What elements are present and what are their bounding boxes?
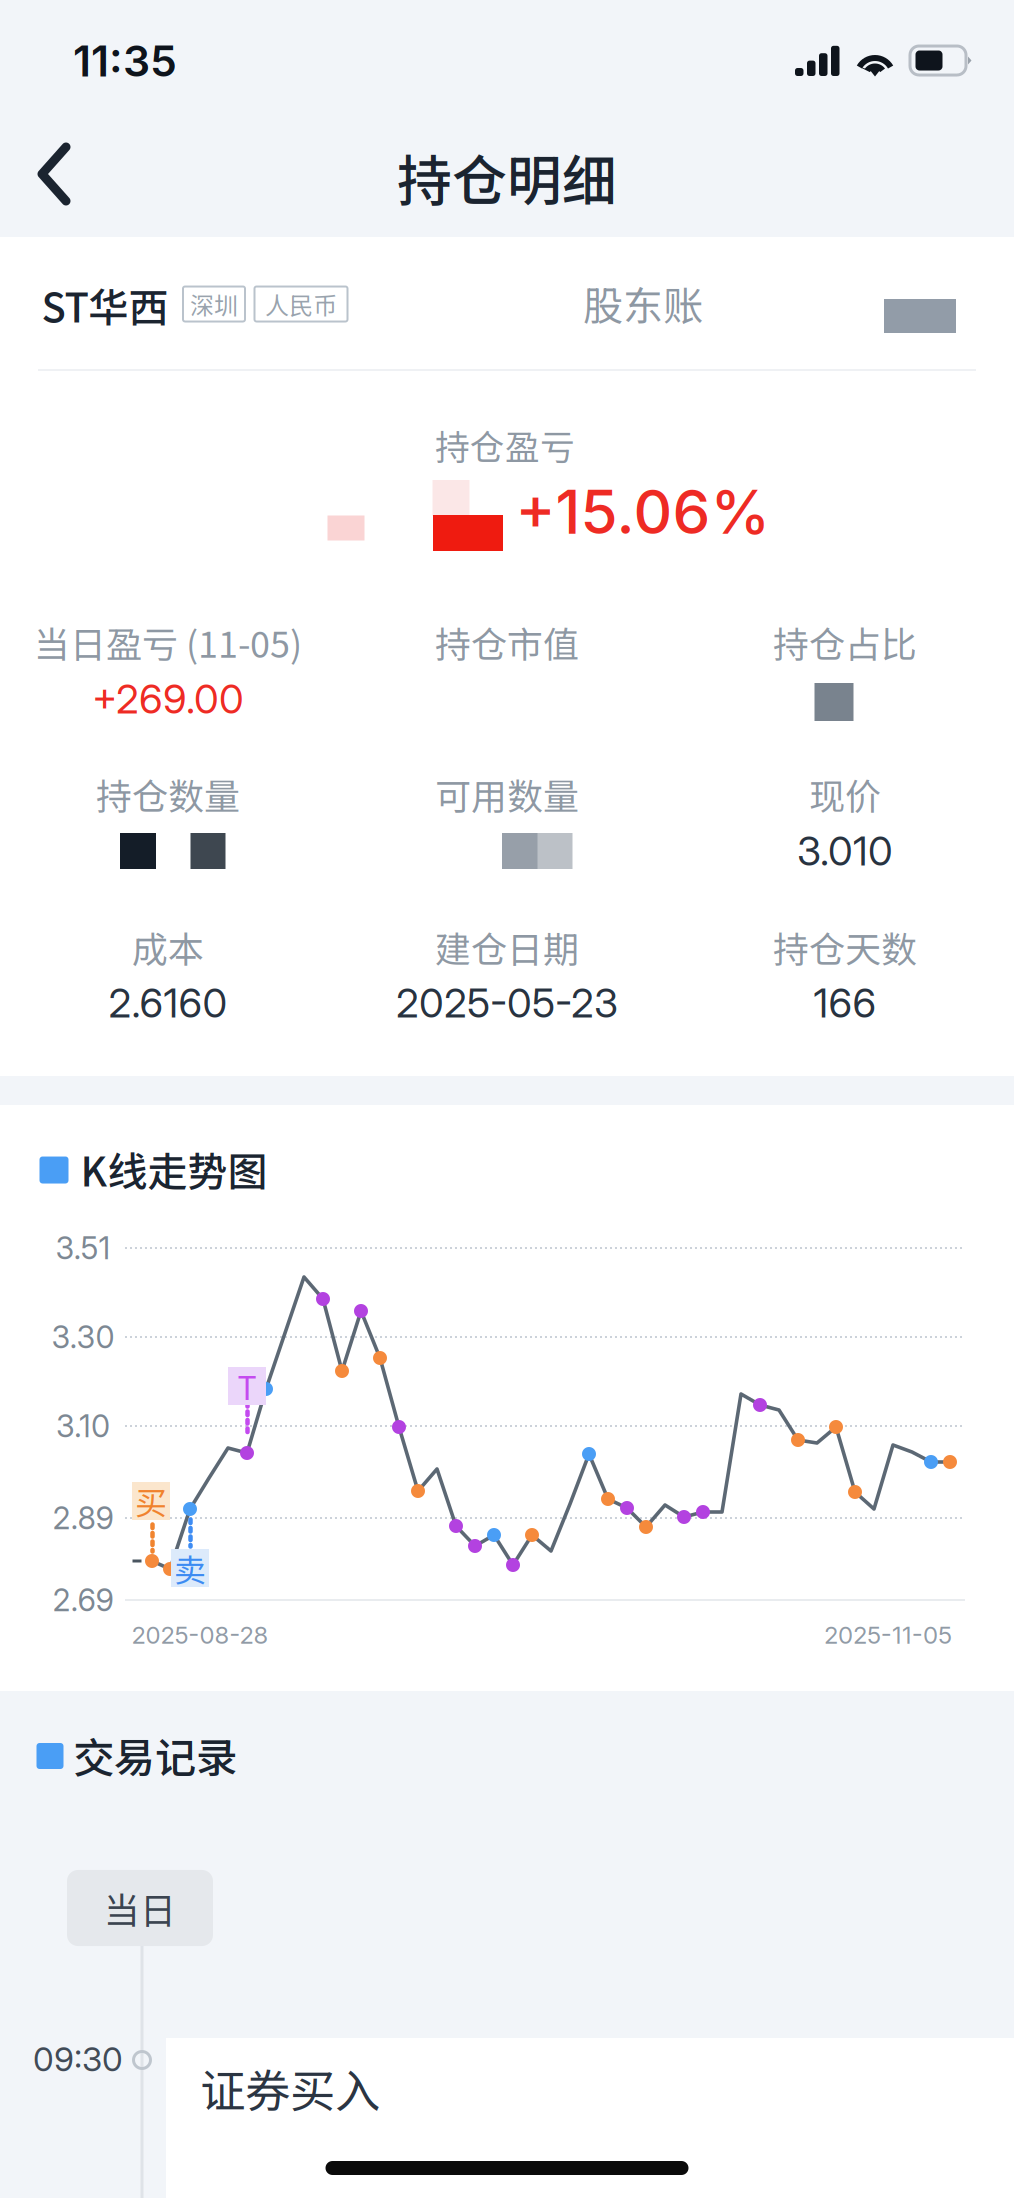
staticText: 股东账 <box>583 274 703 332</box>
staticText: 持仓明细 <box>397 137 617 217</box>
staticText: 持仓数量 <box>96 768 240 820</box>
staticText: 可用数量 <box>435 768 579 820</box>
staticText: 卖 <box>174 1545 206 1591</box>
staticText: 11:35 <box>73 35 177 87</box>
staticText: 3.10 <box>56 1407 110 1444</box>
staticText: 3.010 <box>797 827 893 875</box>
staticText: 成本 <box>132 921 204 973</box>
staticText: T <box>237 1363 256 1409</box>
staticText: 3.51 <box>55 1229 110 1266</box>
staticText: 买 <box>135 1478 167 1524</box>
staticText: 交易记录 <box>73 1725 237 1785</box>
staticText: 2025-08-28 <box>131 1620 268 1649</box>
staticText: 建仓日期 <box>435 921 579 973</box>
staticText: 2025-05-23 <box>396 979 618 1027</box>
button[interactable]: Back <box>0 118 111 230</box>
staticText: 2.6160 <box>108 979 227 1027</box>
staticText: +269.00 <box>92 675 244 723</box>
staticText: 166 <box>813 979 876 1027</box>
staticText: 2.69 <box>52 1581 113 1618</box>
staticText: ST华西 <box>41 276 168 334</box>
staticText: 2025-11-05 <box>824 1620 952 1649</box>
staticText: 现价 <box>809 768 881 820</box>
staticText: 3.30 <box>51 1318 114 1355</box>
staticText: K线走势图 <box>80 1140 267 1198</box>
staticText: 2.89 <box>52 1499 113 1536</box>
staticText: 深圳 <box>190 287 238 321</box>
staticText: 09:30 <box>33 2039 123 2079</box>
staticText: +15.06% <box>515 476 770 548</box>
staticText: 持仓盈亏 <box>435 420 575 470</box>
staticText: 证券买入 <box>200 2055 380 2121</box>
staticText: 当日盈亏 (11-05) <box>34 616 302 668</box>
staticText: 人民币 <box>265 287 337 321</box>
staticText: 当日 <box>104 1882 176 1934</box>
staticText: 持仓天数 <box>773 921 917 973</box>
staticText: 持仓占比 <box>773 616 917 668</box>
staticText: 持仓市值 <box>435 616 579 668</box>
